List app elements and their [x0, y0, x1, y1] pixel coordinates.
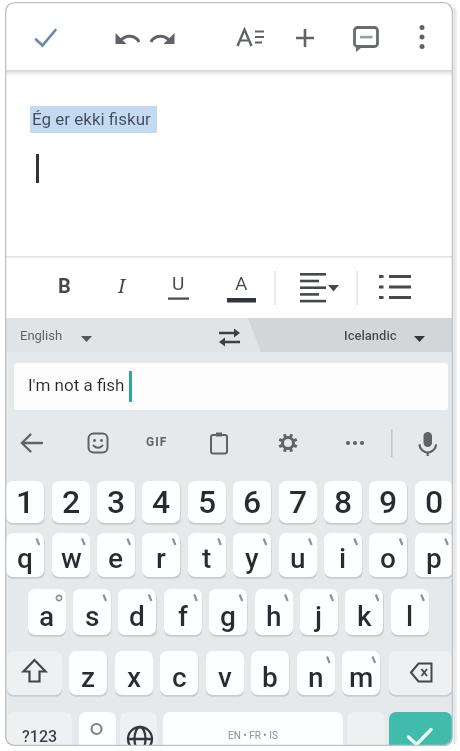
staticText: r	[156, 542, 166, 575]
button[interactable]	[347, 712, 385, 751]
button[interactable]	[268, 423, 308, 463]
staticText: w	[61, 542, 82, 575]
staticText: 3	[107, 483, 126, 521]
button[interactable]: j	[300, 589, 338, 635]
button[interactable]	[143, 20, 183, 60]
staticText: b	[262, 661, 278, 694]
staticText: 2	[62, 483, 81, 521]
staticText: 1	[16, 483, 35, 521]
staticText: 5	[198, 483, 217, 521]
button[interactable]	[285, 18, 325, 58]
staticText: l	[406, 600, 414, 633]
button[interactable]: y	[233, 533, 271, 577]
button[interactable]	[389, 712, 452, 751]
button[interactable]: English	[20, 318, 100, 352]
button[interactable]: h	[255, 589, 293, 635]
button[interactable]: e	[97, 533, 135, 577]
button[interactable]	[120, 712, 157, 751]
button[interactable]: m	[342, 651, 380, 695]
button[interactable]: k	[345, 589, 383, 635]
staticText: c	[172, 661, 187, 694]
button[interactable]: o	[369, 533, 407, 577]
button[interactable]	[79, 423, 119, 463]
button[interactable]	[230, 18, 270, 58]
button[interactable]: 6	[233, 481, 271, 523]
staticText: U	[172, 272, 185, 294]
staticText: h	[266, 600, 282, 633]
button[interactable]: d	[118, 589, 156, 635]
button[interactable]: r	[142, 533, 180, 577]
button[interactable]: b	[251, 651, 289, 695]
staticText: ?123	[22, 727, 58, 746]
button[interactable]	[408, 423, 448, 463]
staticText: I	[118, 272, 126, 299]
button[interactable]: 1	[6, 481, 44, 523]
button[interactable]: Icelandic	[344, 318, 434, 352]
button[interactable]: i	[324, 533, 362, 577]
button[interactable]	[12, 423, 52, 463]
staticText: Ég er ekki fiskur	[32, 109, 151, 129]
staticText: 8	[334, 483, 353, 521]
button[interactable]: EN • FR • IS	[163, 712, 343, 751]
button[interactable]: c	[160, 651, 198, 695]
staticText: Icelandic	[344, 328, 397, 343]
button[interactable]: 9	[369, 481, 407, 523]
staticText: e	[108, 542, 124, 575]
button[interactable]: 5	[188, 481, 226, 523]
staticText: English	[20, 328, 63, 343]
button[interactable]: q	[6, 533, 44, 577]
staticText: y	[245, 542, 259, 575]
staticText: j	[315, 600, 323, 633]
button[interactable]: l	[391, 589, 429, 635]
staticText: 4	[152, 483, 171, 521]
button[interactable]: n	[297, 651, 335, 695]
button[interactable]: z	[69, 651, 107, 695]
button[interactable]: A	[226, 268, 256, 298]
button[interactable]: 0	[415, 481, 453, 523]
button[interactable]	[107, 20, 147, 60]
button[interactable]: B	[49, 270, 79, 300]
staticText: i	[339, 542, 347, 575]
staticText: t	[202, 542, 212, 575]
staticText: g	[220, 600, 236, 633]
button[interactable]	[389, 651, 452, 695]
staticText: a	[39, 600, 55, 633]
button[interactable]	[345, 18, 385, 58]
staticText: z	[81, 661, 96, 694]
staticText: o	[380, 542, 396, 575]
button[interactable]: p	[415, 533, 453, 577]
button[interactable]: 3	[97, 481, 135, 523]
button[interactable]: GIF	[146, 435, 168, 449]
staticText: k	[357, 600, 372, 633]
staticText: 9	[379, 483, 398, 521]
button[interactable]	[372, 270, 416, 304]
button[interactable]: t	[188, 533, 226, 577]
button[interactable]: ?123	[7, 712, 72, 751]
button[interactable]	[25, 18, 65, 58]
button[interactable]	[200, 423, 240, 463]
staticText: n	[308, 661, 324, 694]
staticText: s	[85, 600, 100, 633]
staticText: EN • FR • IS	[228, 730, 278, 742]
button[interactable]: 8	[324, 481, 362, 523]
button[interactable]	[7, 651, 62, 695]
button[interactable]: 2	[52, 481, 90, 523]
button[interactable]: w	[52, 533, 90, 577]
button[interactable]: a	[28, 589, 66, 635]
button[interactable]	[208, 318, 252, 354]
button[interactable]: g	[209, 589, 247, 635]
button[interactable]: 4	[142, 481, 180, 523]
button[interactable]	[402, 18, 442, 58]
button[interactable]: U	[163, 268, 193, 298]
button[interactable]: u	[279, 533, 317, 577]
button[interactable]: f	[164, 589, 202, 635]
button[interactable]	[79, 712, 116, 751]
button[interactable]: x	[115, 651, 153, 695]
button[interactable]: 7	[279, 481, 317, 523]
button[interactable]	[288, 270, 348, 304]
staticText: A	[235, 272, 248, 294]
button[interactable]: s	[73, 589, 111, 635]
button[interactable]: v	[206, 651, 244, 695]
button[interactable]	[335, 423, 375, 463]
button[interactable]: I	[107, 270, 137, 300]
